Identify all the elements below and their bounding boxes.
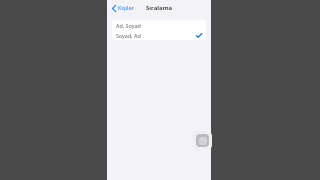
- button[interactable]: Ad, Soyad: [112, 20, 206, 30]
- staticText: Kişiler: [118, 4, 134, 12]
- other: Geri: [112, 5, 116, 12]
- button[interactable]: Soyad, Ad: [112, 30, 206, 40]
- staticText: Ad, Soyad: [116, 22, 141, 29]
- staticText: Sıralama: [146, 4, 173, 12]
- other: Seçili: [196, 33, 202, 38]
- button[interactable]: Geri: [111, 2, 135, 14]
- button[interactable]: AssistiveTouch: [193, 131, 212, 150]
- staticText: Soyad, Ad: [116, 32, 141, 39]
